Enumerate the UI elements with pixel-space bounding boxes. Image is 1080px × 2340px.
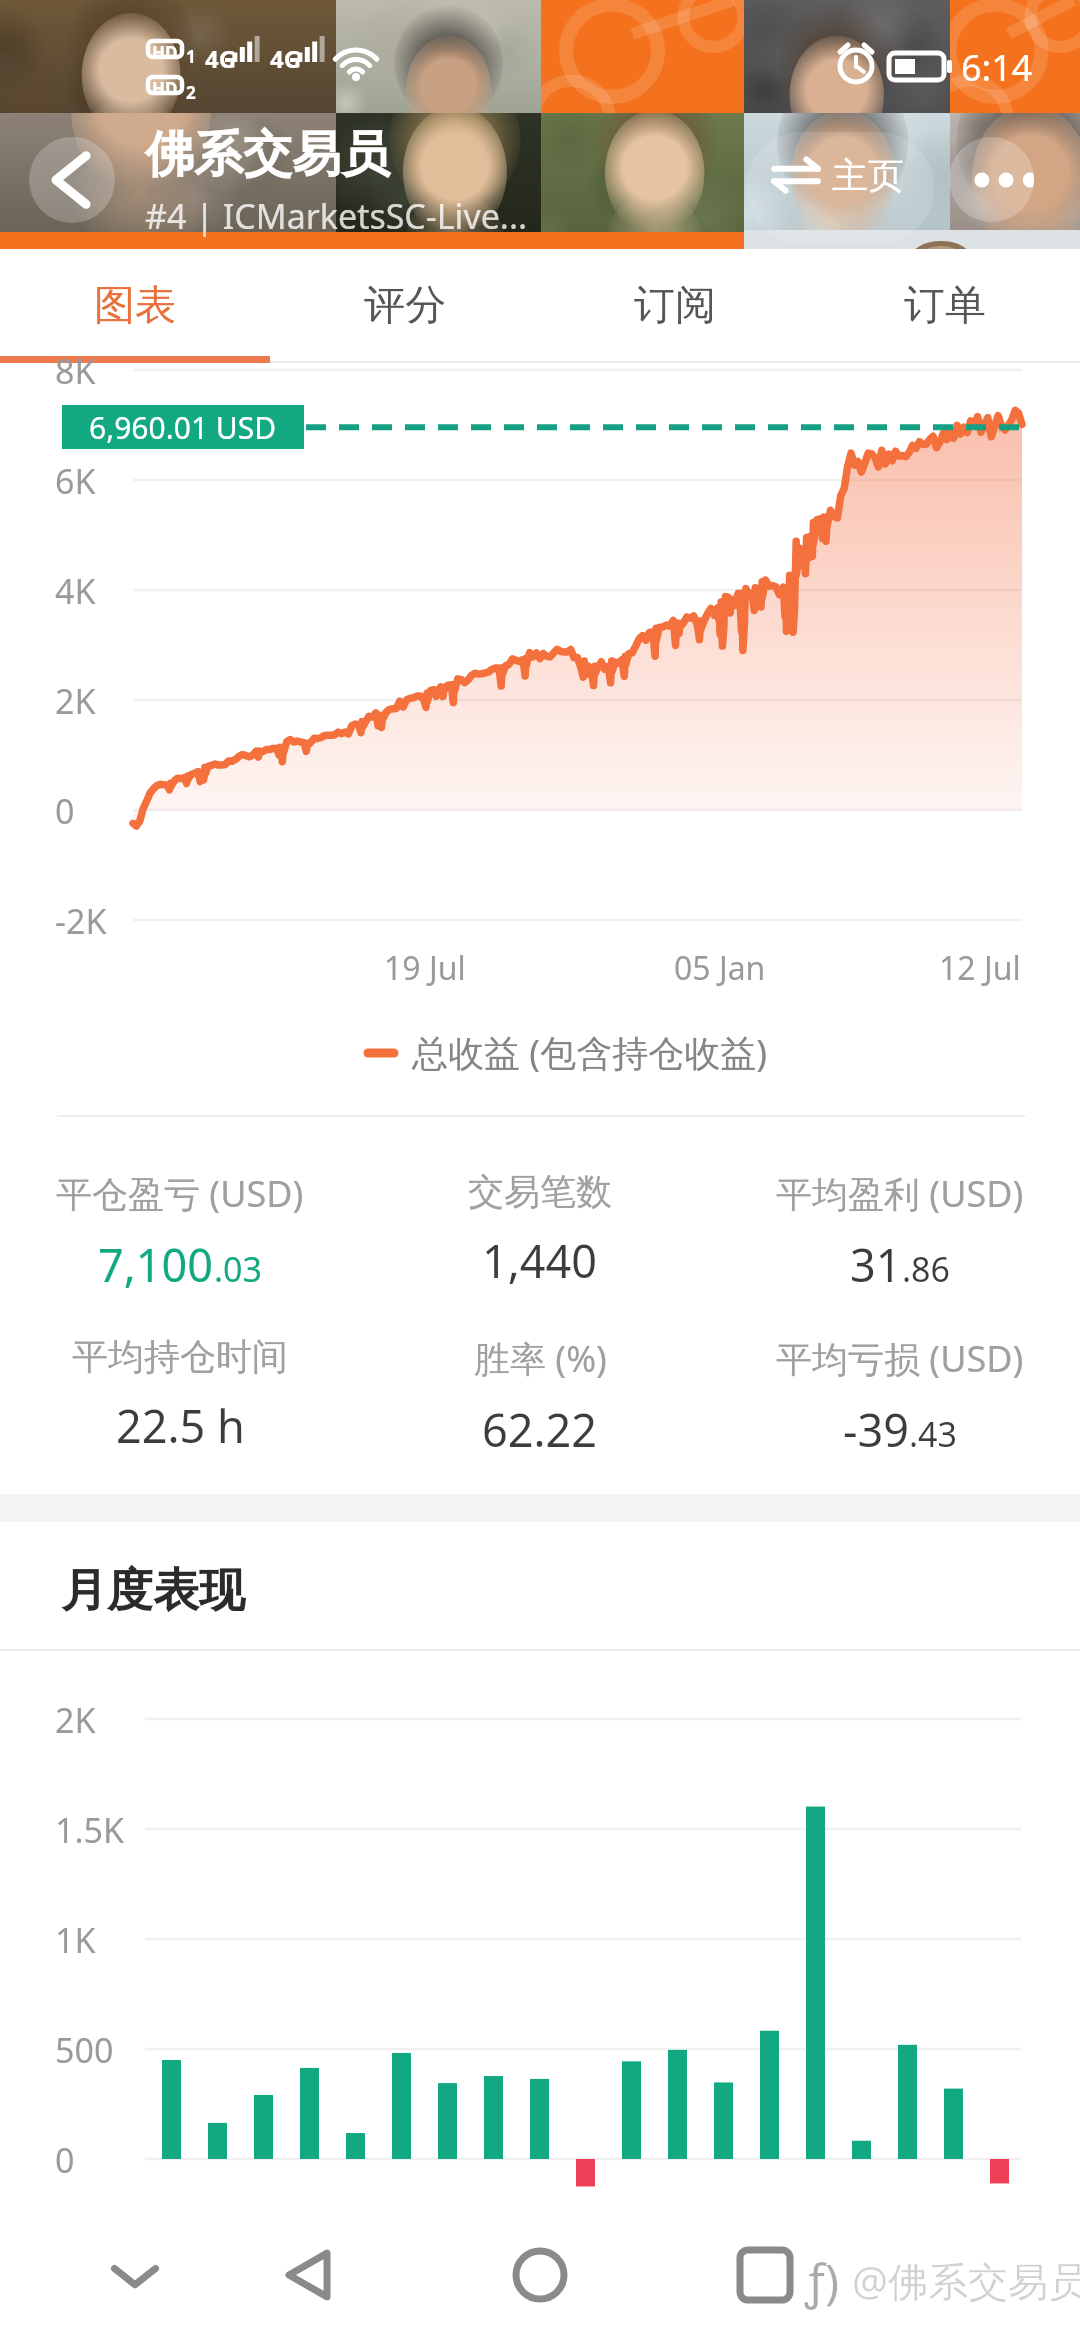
staticText: 平均盈利 (USD)	[776, 1169, 1024, 1218]
staticText: 平仓盈亏 (USD)	[56, 1169, 304, 1218]
staticText: 0	[55, 2137, 75, 2183]
staticText: 500	[55, 2027, 114, 2073]
staticText: 1	[186, 45, 196, 68]
staticText: 平均持仓时间	[72, 1334, 288, 1379]
staticText: 平均亏损 (USD)	[776, 1334, 1024, 1383]
staticText: 6,960.01 USD	[89, 407, 277, 448]
button[interactable]: 评分	[270, 249, 540, 363]
staticText: 6:14	[961, 43, 1033, 92]
staticText: 4G	[270, 42, 302, 75]
staticText: -39	[843, 1399, 909, 1460]
staticText: 6K	[55, 458, 96, 504]
staticText: #4 | ICMarketsSC-Live...	[145, 193, 528, 239]
staticText: 62.22	[482, 1399, 598, 1460]
staticText: 31	[850, 1234, 902, 1295]
staticText: .03	[214, 1246, 263, 1292]
button[interactable]: 订单	[810, 249, 1080, 363]
staticText: 22.5 h	[116, 1395, 245, 1456]
staticText: 7,100	[98, 1234, 214, 1295]
staticText: 4G	[205, 42, 237, 75]
staticText: 图表	[94, 280, 176, 332]
staticText: -2K	[55, 898, 107, 944]
staticText: 2K	[55, 1697, 96, 1743]
button[interactable]: 主页	[770, 142, 904, 208]
button[interactable]: 订阅	[540, 249, 810, 363]
staticText: 胜率 (%)	[474, 1334, 607, 1383]
staticText: 佛系交易员	[145, 124, 390, 186]
staticText: 2	[186, 81, 196, 104]
staticText: 8K	[55, 348, 96, 394]
button[interactable]: Back	[263, 2230, 353, 2320]
staticText: 订单	[904, 280, 986, 332]
button[interactable]: Recents	[720, 2230, 810, 2320]
staticText: 1.5K	[55, 1807, 125, 1853]
staticText: 1,440	[482, 1230, 598, 1291]
staticText: 12 Jul	[939, 946, 1021, 990]
staticText: 19 Jul	[384, 946, 466, 990]
staticText: 2K	[55, 678, 96, 724]
staticText: 1K	[55, 1917, 96, 1963]
staticText: HD	[152, 77, 178, 100]
button[interactable]: Hide keyboard	[90, 2230, 180, 2320]
staticText: 月度表现	[61, 1562, 245, 1620]
staticText: .43	[909, 1411, 958, 1457]
button[interactable]: Back	[29, 137, 115, 223]
button[interactable]: More options	[949, 137, 1034, 222]
staticText: 订阅	[634, 280, 716, 332]
staticText: @佛系交易员	[852, 2253, 1080, 2308]
staticText: 05 Jan	[674, 946, 766, 990]
staticText: ƒ)	[805, 2248, 840, 2313]
staticText: 评分	[364, 280, 446, 332]
staticText: 4K	[55, 568, 96, 614]
staticText: 交易笔数	[468, 1169, 612, 1214]
staticText: 0	[55, 788, 75, 834]
button[interactable]: Home	[495, 2230, 585, 2320]
staticText: 总收益 (包含持仓收益)	[412, 1028, 767, 1077]
button[interactable]: 图表	[0, 249, 270, 363]
staticText: HD	[152, 41, 178, 64]
staticText: .86	[902, 1246, 951, 1292]
staticText: 主页	[832, 153, 904, 198]
